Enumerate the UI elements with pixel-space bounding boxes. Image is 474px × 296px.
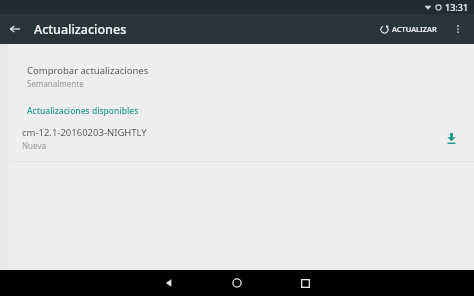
- button[interactable]: Back: [135, 270, 203, 296]
- button[interactable]: Download update: [438, 125, 464, 151]
- button[interactable]: ACTUALIZAR: [374, 19, 443, 39]
- staticText: Nueva: [22, 140, 46, 151]
- staticText: Comprobar actualizaciones: [27, 64, 149, 77]
- button[interactable]: Recent apps: [271, 270, 339, 296]
- button[interactable]: Back: [0, 14, 30, 44]
- staticText: Actualizaciones: [34, 21, 127, 38]
- button[interactable]: Home: [203, 270, 271, 296]
- staticText: cm-12.1-20160203-NIGHTLY: [22, 126, 147, 139]
- button[interactable]: cm-12.1-20160203-NIGHTLY: [8, 123, 474, 153]
- button[interactable]: Comprobar actualizaciones: [8, 62, 474, 91]
- button[interactable]: More options: [445, 16, 471, 42]
- staticText: 13:31: [445, 1, 469, 13]
- staticText: ACTUALIZAR: [392, 24, 437, 34]
- staticText: Semanalmente: [27, 78, 84, 89]
- staticText: Actualizaciones disponibles: [27, 105, 139, 117]
